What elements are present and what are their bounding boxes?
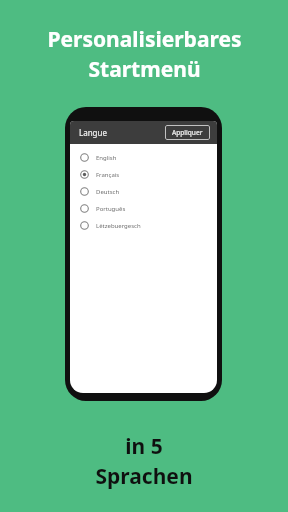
staticText: Deutsch bbox=[96, 188, 120, 196]
staticText: Lëtzebuergesch bbox=[96, 222, 141, 230]
staticText: in 5 bbox=[125, 432, 163, 461]
staticText: Personalisierbares bbox=[47, 25, 242, 54]
staticText: Français bbox=[96, 171, 120, 179]
button[interactable]: Appliquer bbox=[165, 125, 210, 140]
button[interactable]: Português bbox=[70, 200, 217, 217]
staticText: Appliquer bbox=[172, 128, 203, 137]
staticText: Langue bbox=[79, 127, 107, 138]
button[interactable]: Lëtzebuergesch bbox=[70, 217, 217, 234]
button[interactable]: Français bbox=[70, 166, 217, 183]
button[interactable]: Deutsch bbox=[70, 183, 217, 200]
staticText: English bbox=[96, 154, 117, 162]
staticText: Sprachen bbox=[95, 462, 193, 491]
staticText: Português bbox=[96, 205, 126, 213]
button[interactable]: English bbox=[70, 149, 217, 166]
staticText: Startmenü bbox=[88, 55, 201, 84]
